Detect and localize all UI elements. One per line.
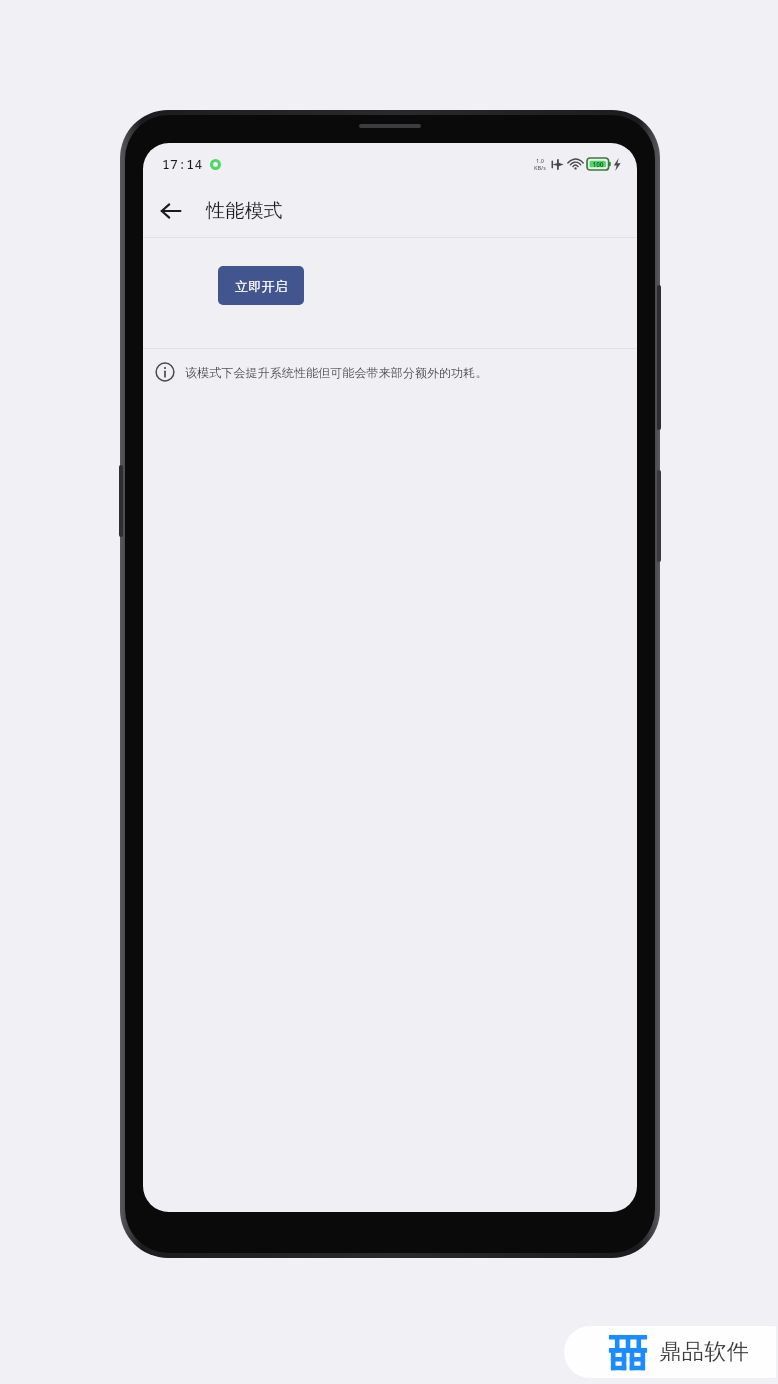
staticText: 1.0 — [536, 157, 544, 164]
staticText: 立即开启 — [235, 278, 288, 294]
button[interactable]: 立即开启 — [218, 266, 304, 305]
staticText: 鼎品软件 — [659, 1338, 749, 1366]
staticText: 该模式下会提升系统性能但可能会带来部分额外的功耗。 — [185, 365, 488, 380]
staticText: 17:14 — [162, 155, 203, 173]
button[interactable]: 返回 — [149, 189, 193, 233]
staticText: KB/s — [534, 164, 546, 171]
staticText: 100 — [592, 160, 604, 169]
staticText: 性能模式 — [206, 199, 283, 223]
button[interactable]: 该模式下会提升系统性能但可能会带来部分额外的功耗。 — [143, 349, 637, 395]
